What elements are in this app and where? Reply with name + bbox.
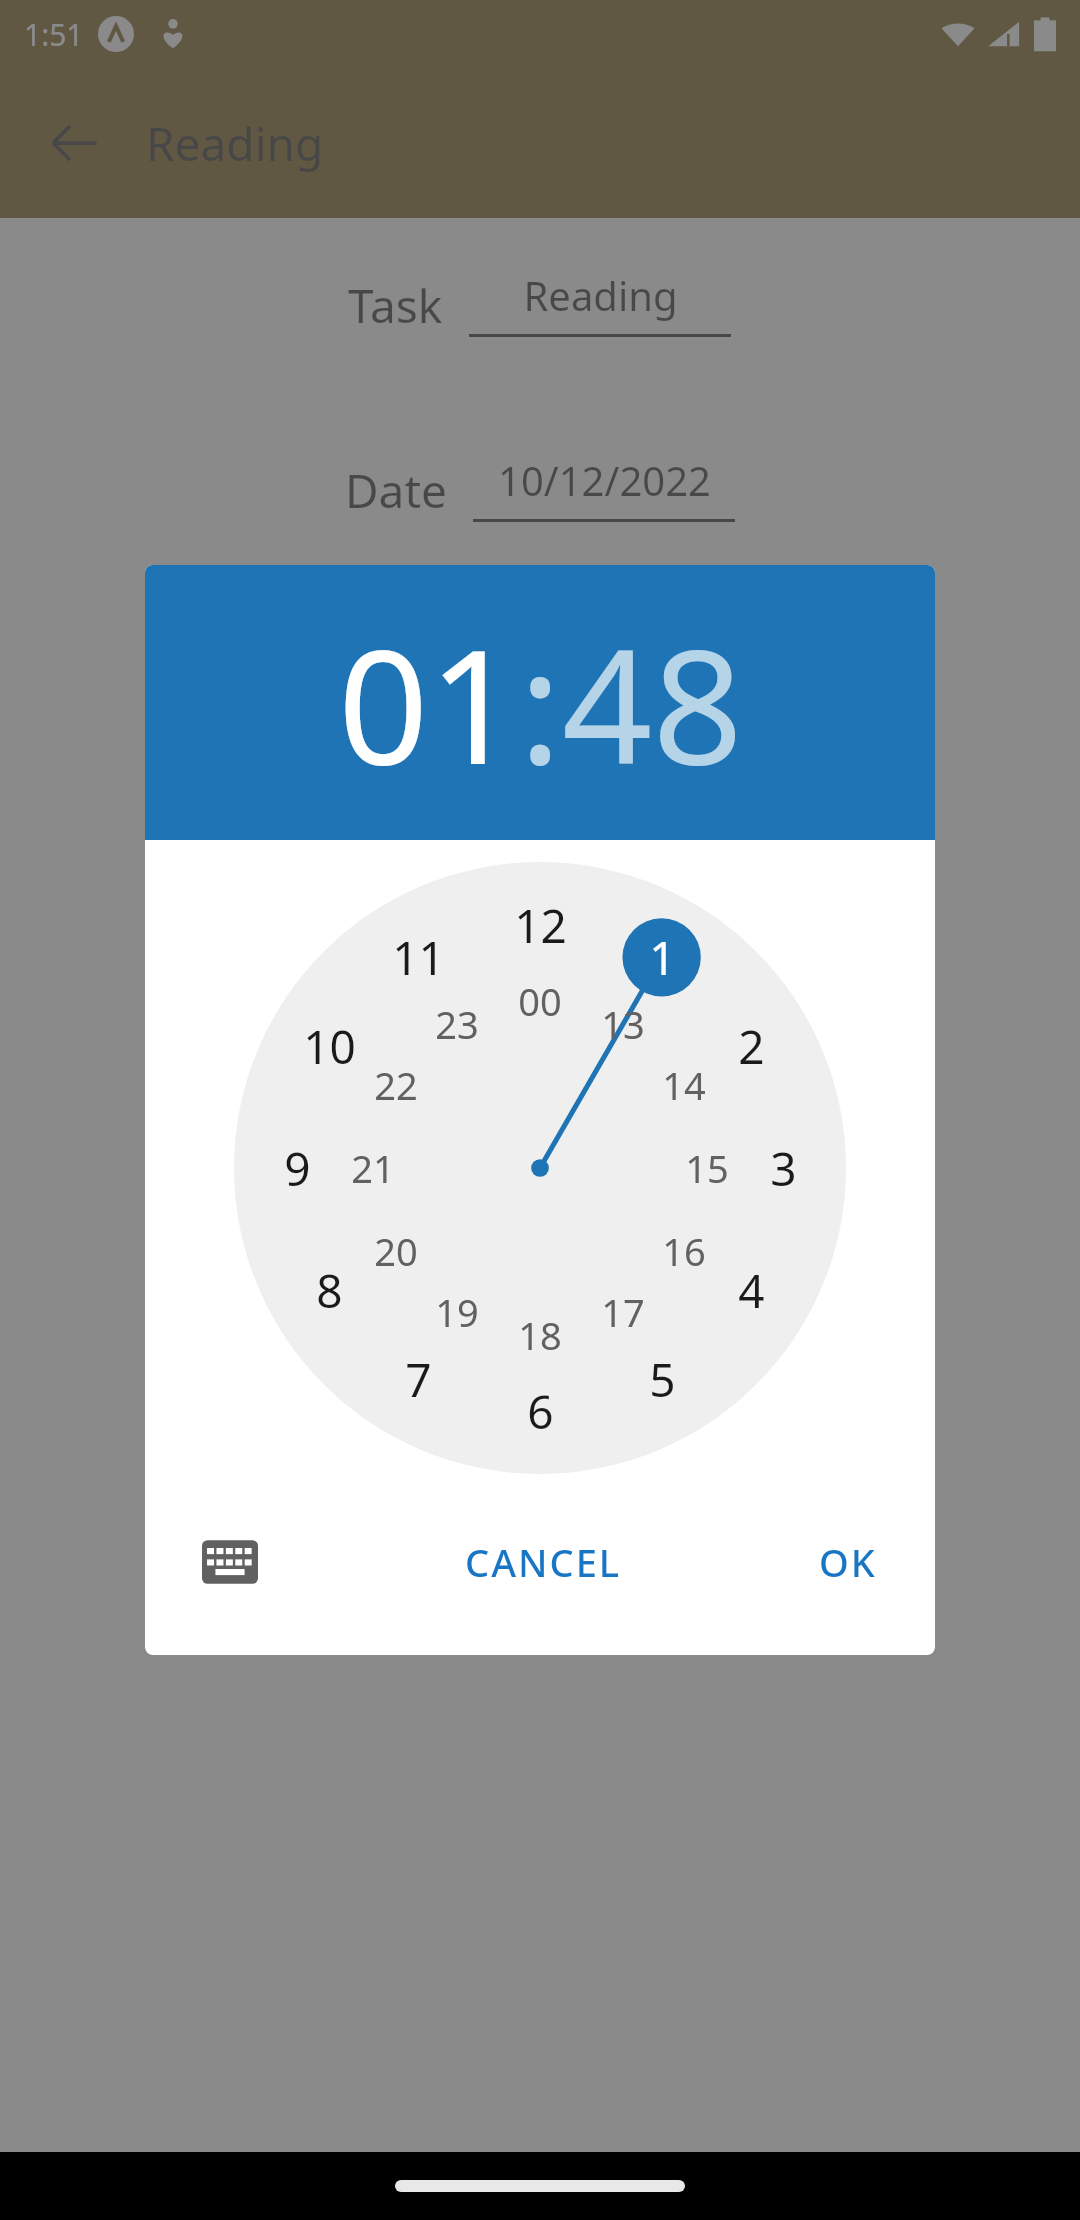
staticText: 1 (649, 926, 676, 989)
button[interactable]: 10/12/2022 (473, 453, 735, 522)
staticText: 1:51 (24, 14, 84, 55)
button[interactable]: 4 (712, 1251, 790, 1329)
button[interactable]: 5 (623, 1340, 701, 1418)
staticText: 10/12/2022 (498, 453, 711, 507)
button[interactable]: 14 (651, 1052, 717, 1118)
staticText: 17 (601, 1286, 645, 1338)
button[interactable]: 11 (379, 918, 457, 996)
button[interactable]: 01:48 (533, 638, 795, 707)
button[interactable]: 13 (590, 991, 656, 1057)
staticText: 2 (738, 1015, 765, 1078)
staticText: 8 (316, 1259, 343, 1322)
staticText: 15 (685, 1142, 729, 1194)
button[interactable]: 12 (501, 886, 579, 964)
staticText: 01:00 (578, 823, 681, 877)
button[interactable]: Reading (469, 268, 731, 337)
staticText: 7 (405, 1348, 432, 1411)
button[interactable]: 18 (507, 1302, 573, 1368)
button[interactable]: 20 (363, 1218, 429, 1284)
button[interactable]: 2 (712, 1007, 790, 1085)
button[interactable]: 17 (590, 1279, 656, 1345)
staticText: 00 (518, 975, 562, 1027)
staticText: 01:48 (613, 638, 716, 692)
staticText: 3 (770, 1137, 797, 1200)
button[interactable]: 21 (340, 1135, 406, 1201)
staticText: 4 (738, 1259, 765, 1322)
staticText: CANCEL (465, 1536, 622, 1588)
staticText: 9 (284, 1137, 311, 1200)
button[interactable]: 00 (507, 968, 573, 1034)
staticText: 18 (518, 1309, 562, 1361)
staticText: 16 (662, 1225, 706, 1277)
staticText: 23 (435, 998, 479, 1050)
button[interactable]: 3 (744, 1129, 822, 1207)
button[interactable]: 22 (363, 1052, 429, 1118)
button[interactable]: 01 (338, 595, 519, 810)
button[interactable]: 8 (290, 1251, 368, 1329)
staticText: 48 (562, 595, 743, 810)
staticText: Task (348, 274, 443, 337)
staticText: Reading (523, 268, 678, 322)
button[interactable]: Back (26, 95, 122, 191)
staticText: 11 (392, 926, 445, 989)
button[interactable]: 23 (424, 991, 490, 1057)
staticText: : (519, 595, 562, 810)
staticText: 22 (374, 1059, 418, 1111)
staticText: 5 (649, 1348, 676, 1411)
staticText: 10 (303, 1015, 356, 1078)
button[interactable]: Switch to keyboard input (185, 1517, 275, 1607)
staticText: 14 (662, 1059, 706, 1111)
button[interactable]: CANCEL (445, 1522, 642, 1602)
staticText: 01 (338, 595, 519, 810)
staticText: OK (819, 1536, 877, 1588)
staticText: 12 (514, 894, 567, 957)
button[interactable]: 1 (623, 918, 701, 996)
button[interactable]: 48 (562, 595, 743, 810)
button[interactable]: 16 (651, 1218, 717, 1284)
staticText: 19 (435, 1286, 479, 1338)
button[interactable]: OK (799, 1522, 897, 1602)
staticText: 6 (527, 1380, 554, 1443)
staticText: Start Time (285, 644, 507, 707)
staticText: Length (320, 829, 472, 892)
button[interactable]: 9 (258, 1129, 336, 1207)
button[interactable]: 19 (424, 1279, 490, 1345)
staticText: Date (345, 459, 447, 522)
button[interactable]: 10 (290, 1007, 368, 1085)
button[interactable]: 15 (674, 1135, 740, 1201)
staticText: 21 (351, 1142, 395, 1194)
staticText: 13 (601, 998, 645, 1050)
button[interactable]: 7 (379, 1340, 457, 1418)
button[interactable]: 01:00 (498, 823, 760, 892)
staticText: Reading (146, 112, 324, 175)
button[interactable]: 6 (501, 1372, 579, 1450)
staticText: 20 (374, 1225, 418, 1277)
